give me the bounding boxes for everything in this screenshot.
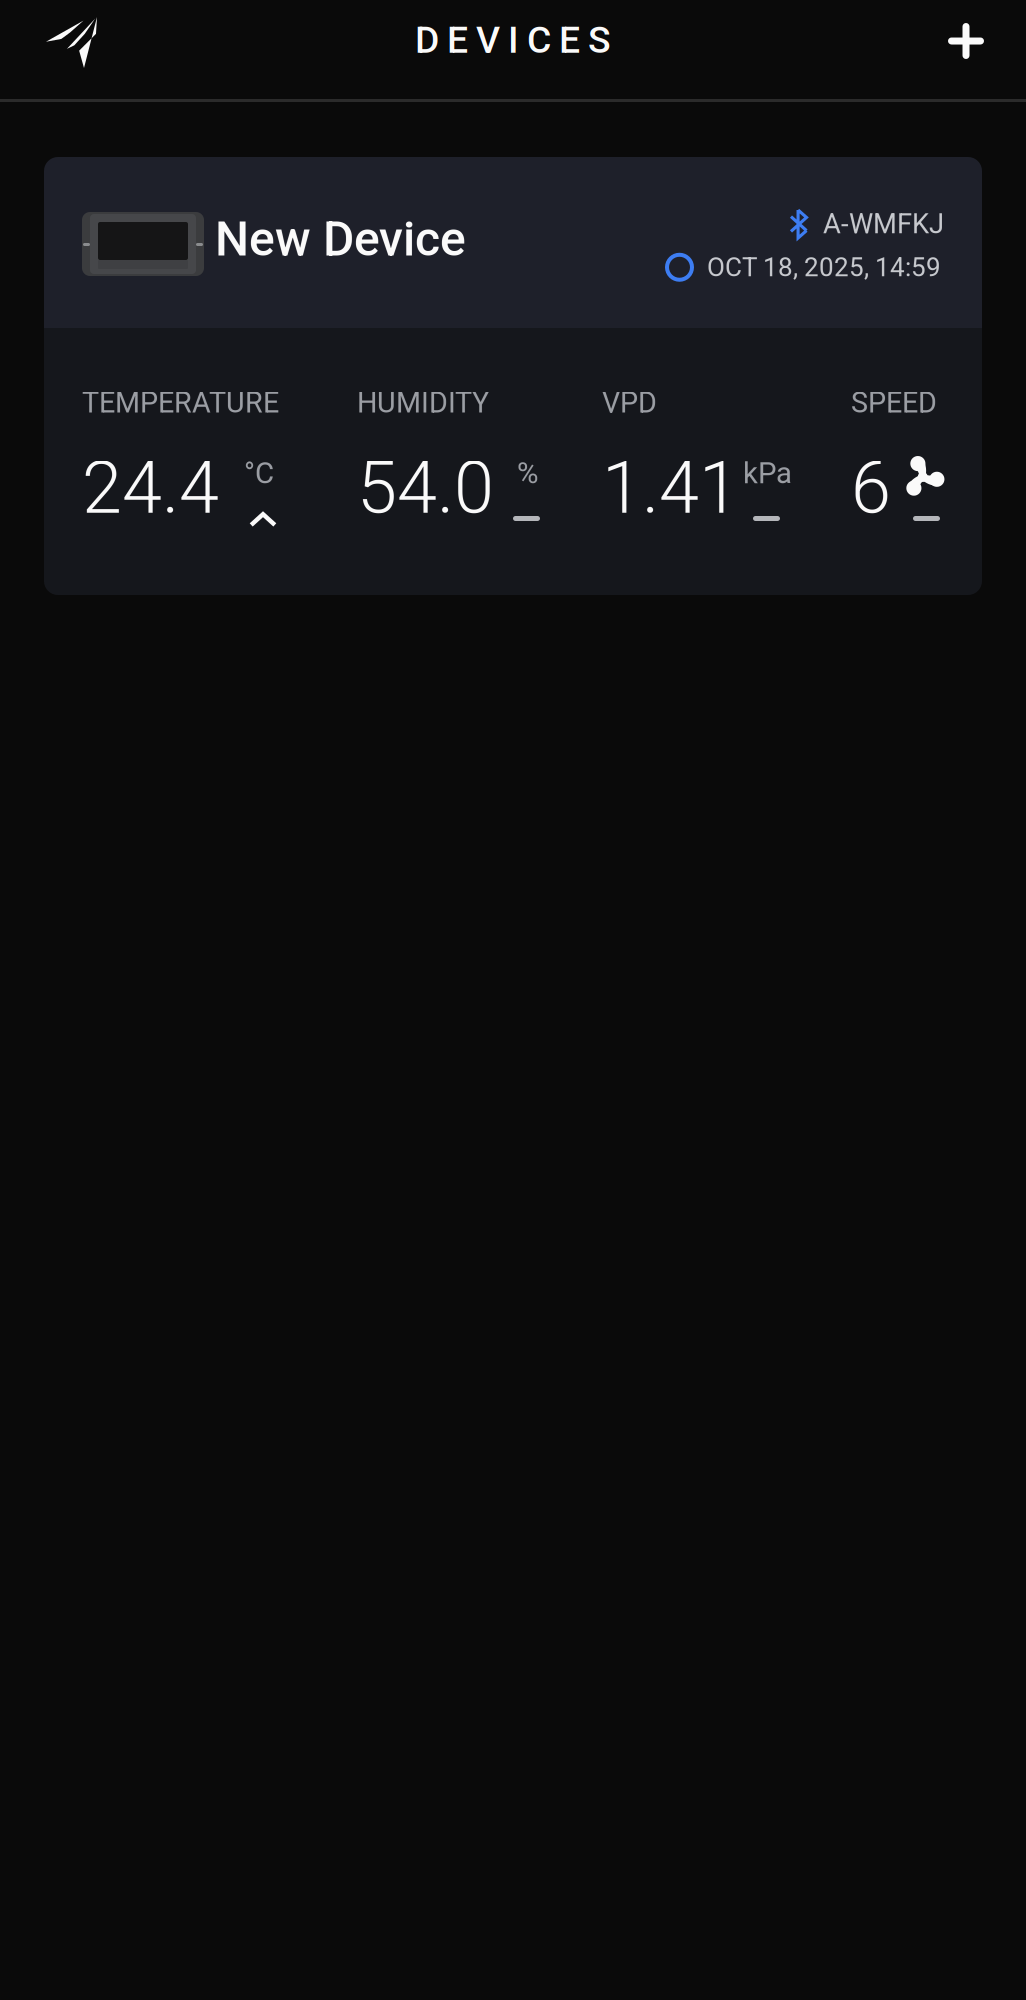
button[interactable]: Share xyxy=(0,0,127,91)
staticText: HUMIDITY xyxy=(357,386,489,420)
staticText: 24.4 xyxy=(82,446,219,530)
staticText: TEMPERATURE xyxy=(82,386,279,420)
staticText: SPEED xyxy=(851,386,937,420)
staticText: °C xyxy=(244,456,274,490)
staticText: New Device xyxy=(215,211,466,267)
staticText: 1.41 xyxy=(602,446,739,530)
button[interactable]: New Device xyxy=(44,157,982,595)
staticText: D E V I C E S xyxy=(415,18,611,62)
staticText: OCT 18, 2025, 14:59 xyxy=(707,252,941,282)
staticText: 6 xyxy=(851,446,891,530)
staticText: % xyxy=(517,456,538,490)
button[interactable]: Add device xyxy=(914,0,1026,91)
staticText: A-WMFKJ xyxy=(823,208,944,240)
staticText: kPa xyxy=(743,456,792,490)
staticText: VPD xyxy=(602,386,657,420)
staticText: 54.0 xyxy=(357,446,494,530)
